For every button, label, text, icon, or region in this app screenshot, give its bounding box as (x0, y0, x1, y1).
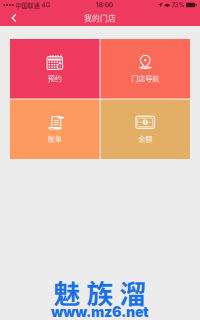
staticText: 18:00 (96, 1, 113, 9)
button[interactable]: ¥ (100, 99, 190, 159)
staticText: ¥ (144, 119, 147, 126)
staticText: 我的门店 (84, 12, 116, 24)
staticText: 73% (172, 1, 185, 9)
button[interactable]: 门店导航 (100, 39, 190, 98)
staticText: 中国联通 (16, 1, 40, 9)
staticText: 魅 族 溜 (53, 273, 146, 311)
button[interactable]: Back (0, 10, 28, 26)
staticText: 4G (42, 1, 51, 9)
staticText: 门店导航 (131, 73, 159, 83)
staticText: www.mz6.net (51, 303, 149, 320)
staticText: 预约 (48, 73, 62, 83)
staticText: 账单 (48, 133, 62, 144)
button[interactable]: 预约 (10, 39, 99, 98)
staticText: 余额 (138, 133, 152, 144)
button[interactable]: 账单 (10, 99, 99, 159)
